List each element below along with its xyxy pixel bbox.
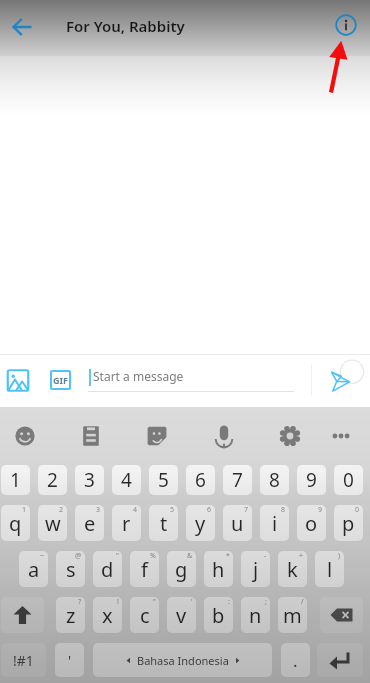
button[interactable]: w — [38, 505, 67, 541]
staticText: 7 — [244, 505, 249, 515]
button[interactable]: s — [56, 551, 85, 587]
button[interactable]: m — [278, 597, 307, 633]
staticText: 8 — [281, 505, 286, 515]
button[interactable]: a — [19, 551, 48, 587]
button[interactable]: Start a message — [88, 354, 298, 407]
button[interactable]: t — [149, 505, 178, 541]
button[interactable]: x — [93, 597, 122, 633]
staticText: g — [175, 556, 188, 583]
staticText: ? — [78, 597, 82, 607]
button[interactable]: i — [260, 505, 289, 541]
button[interactable]: Send photo — [0, 356, 36, 404]
staticText: ' — [191, 597, 193, 607]
button[interactable]: g — [167, 551, 196, 587]
button[interactable]: 6 — [186, 465, 215, 495]
staticText: c — [140, 602, 150, 629]
button[interactable]: 2 — [38, 465, 67, 495]
staticText: 2 — [59, 505, 64, 515]
button[interactable]: j — [241, 551, 270, 587]
button[interactable]: Shift — [1, 597, 44, 633]
button[interactable]: l — [315, 551, 344, 587]
button[interactable]: d — [93, 551, 122, 587]
button[interactable]: f — [130, 551, 159, 587]
button[interactable]: q — [1, 505, 30, 541]
button[interactable]: 5 — [149, 465, 178, 495]
button[interactable]: Backspace — [320, 597, 363, 633]
staticText: 9 — [318, 505, 323, 515]
button[interactable]: Enter — [317, 643, 363, 677]
staticText: b — [212, 602, 225, 629]
staticText: t — [160, 510, 168, 537]
button[interactable]: Stickers — [138, 415, 176, 457]
staticText: s — [66, 556, 76, 583]
button[interactable]: z — [56, 597, 85, 633]
button[interactable]: e — [75, 505, 104, 541]
button[interactable]: h — [204, 551, 233, 587]
staticText: l — [327, 556, 333, 583]
button[interactable]: 7 — [223, 465, 252, 495]
staticText: / — [301, 597, 304, 607]
button[interactable]: v — [167, 597, 196, 633]
button[interactable]: Voice input — [205, 415, 243, 457]
staticText: e — [84, 510, 96, 537]
button[interactable]: 0 — [334, 465, 363, 495]
button[interactable]: Settings — [271, 415, 309, 457]
button[interactable]: 9 — [297, 465, 326, 495]
staticText: h — [212, 556, 225, 583]
staticText: . — [293, 649, 298, 672]
staticText: " — [153, 597, 156, 607]
staticText: 1 — [10, 467, 21, 493]
staticText: 6 — [207, 505, 212, 515]
staticText: o — [305, 510, 318, 537]
staticText: 8 — [269, 467, 280, 493]
staticText: m — [283, 602, 302, 629]
staticText: 5 — [170, 505, 175, 515]
staticText: f — [141, 556, 148, 583]
staticText: z — [66, 602, 76, 629]
staticText: * — [226, 551, 230, 561]
staticText: 7 — [232, 467, 243, 493]
staticText: 3 — [96, 505, 101, 515]
button[interactable]: b — [204, 597, 233, 633]
button[interactable]: . — [281, 643, 310, 677]
button[interactable]: Clipboard — [72, 415, 110, 457]
staticText: - — [264, 551, 267, 561]
staticText: Bahasa Indonesia — [137, 653, 229, 668]
staticText: Start a message — [93, 368, 184, 384]
staticText: q — [9, 510, 22, 537]
button[interactable]: 8 — [260, 465, 289, 495]
button[interactable]: r — [112, 505, 141, 541]
button[interactable]: More options — [322, 415, 360, 457]
button[interactable]: y — [186, 505, 215, 541]
staticText: @ — [75, 551, 82, 561]
staticText: ! — [117, 597, 119, 607]
button[interactable]: c — [130, 597, 159, 633]
staticText: 2 — [47, 467, 58, 493]
staticText: & — [187, 551, 193, 561]
button[interactable]: Send — [318, 356, 370, 404]
button[interactable]: o — [297, 505, 326, 541]
button[interactable]: Send GIF — [42, 356, 78, 404]
button[interactable]: Emoji — [6, 415, 44, 457]
staticText: p — [342, 510, 355, 537]
staticText: k — [287, 556, 298, 583]
staticText: !#1 — [13, 651, 34, 670]
staticText: " — [116, 551, 119, 561]
button[interactable]: u — [223, 505, 252, 541]
button[interactable]: 4 — [112, 465, 141, 495]
staticText: For You, Rabbity — [66, 16, 185, 36]
button[interactable]: Conversation info — [324, 3, 368, 47]
button[interactable]: 1 — [1, 465, 30, 495]
staticText: r — [122, 510, 131, 537]
button[interactable]: 3 — [75, 465, 104, 495]
button[interactable]: k — [278, 551, 307, 587]
staticText: 0 — [343, 467, 354, 493]
staticText: GIF — [53, 374, 68, 386]
staticText: ' — [68, 651, 72, 670]
button[interactable]: n — [241, 597, 270, 633]
button[interactable]: Space, Bahasa Indonesia — [93, 643, 272, 677]
button[interactable]: p — [334, 505, 363, 541]
button[interactable]: ' — [55, 643, 84, 677]
button[interactable]: !#1 — [1, 643, 46, 677]
button[interactable]: Back — [0, 5, 44, 49]
